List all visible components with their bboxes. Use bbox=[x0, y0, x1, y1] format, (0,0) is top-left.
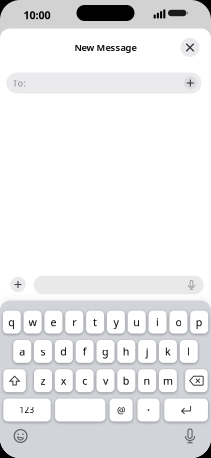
button[interactable]: v bbox=[96, 369, 114, 392]
button[interactable]: f bbox=[76, 340, 94, 363]
button[interactable]: g bbox=[96, 340, 114, 363]
staticText: z bbox=[40, 374, 45, 388]
button[interactable]: y bbox=[107, 311, 125, 334]
staticText: c bbox=[82, 374, 87, 388]
button[interactable]: p bbox=[190, 311, 208, 334]
button[interactable]: s bbox=[34, 340, 52, 363]
button[interactable]: Emoji bbox=[13, 428, 29, 444]
button[interactable]: z bbox=[34, 369, 52, 392]
staticText: @ bbox=[117, 404, 125, 416]
staticText: y bbox=[113, 315, 118, 329]
button[interactable]: m bbox=[159, 369, 177, 392]
staticText: s bbox=[40, 344, 45, 358]
staticText: i bbox=[156, 315, 159, 329]
staticText: v bbox=[103, 374, 108, 388]
button[interactable]: w bbox=[24, 311, 42, 334]
staticText: a bbox=[19, 344, 25, 358]
button[interactable]: Close bbox=[180, 38, 199, 57]
staticText: New Message bbox=[74, 41, 136, 54]
staticText: w bbox=[29, 315, 37, 329]
button[interactable]: Add Contact bbox=[184, 76, 197, 89]
button[interactable]: 123 bbox=[3, 398, 51, 421]
button[interactable]: q bbox=[3, 311, 21, 334]
button[interactable]: c bbox=[76, 369, 94, 392]
staticText: 123 bbox=[19, 405, 34, 415]
staticText: t bbox=[93, 315, 97, 329]
staticText: n bbox=[144, 374, 151, 388]
button[interactable]: Return bbox=[164, 398, 208, 421]
staticText: k bbox=[165, 344, 171, 358]
button[interactable]: @ bbox=[109, 398, 133, 421]
button[interactable]: e bbox=[44, 311, 62, 334]
staticText: d bbox=[60, 344, 67, 358]
staticText: m bbox=[163, 374, 173, 388]
staticText: o bbox=[175, 315, 181, 329]
button[interactable]: h bbox=[117, 340, 135, 363]
staticText: To: bbox=[12, 77, 26, 89]
button[interactable]: Dictate bbox=[186, 279, 196, 291]
button[interactable]: Shift bbox=[3, 369, 26, 392]
staticText: h bbox=[123, 344, 130, 358]
button[interactable]: l bbox=[180, 340, 198, 363]
button[interactable]: i bbox=[149, 311, 167, 334]
staticText: x bbox=[61, 374, 67, 388]
button[interactable]: Add Attachment bbox=[10, 277, 26, 292]
button[interactable]: x bbox=[55, 369, 73, 392]
button[interactable]: Dictation bbox=[183, 427, 197, 444]
staticText: l bbox=[187, 344, 190, 358]
button[interactable]: o bbox=[169, 311, 187, 334]
staticText: p bbox=[196, 315, 203, 329]
button[interactable]: k bbox=[159, 340, 177, 363]
staticText: q bbox=[8, 315, 15, 329]
button[interactable]: n bbox=[138, 369, 156, 392]
staticText: u bbox=[133, 315, 140, 329]
button[interactable]: Space bbox=[55, 398, 105, 421]
button[interactable]: r bbox=[65, 311, 83, 334]
staticText: j bbox=[146, 344, 149, 358]
staticText: r bbox=[72, 315, 76, 329]
staticText: g bbox=[102, 344, 109, 358]
button[interactable]: a bbox=[13, 340, 31, 363]
button[interactable]: Delete bbox=[185, 369, 208, 392]
staticText: f bbox=[83, 344, 87, 358]
staticText: e bbox=[50, 315, 56, 329]
button[interactable]: t bbox=[86, 311, 104, 334]
button[interactable]: u bbox=[128, 311, 146, 334]
button[interactable]: d bbox=[55, 340, 73, 363]
button[interactable]: Period bbox=[137, 398, 159, 421]
button[interactable]: b bbox=[117, 369, 135, 392]
button[interactable]: j bbox=[138, 340, 156, 363]
staticText: b bbox=[123, 374, 130, 388]
staticText: 10:00 bbox=[23, 8, 50, 22]
